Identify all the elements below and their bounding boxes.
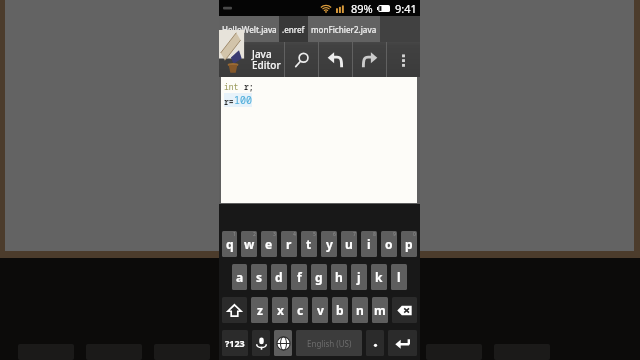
button[interactable]: int <box>221 77 417 203</box>
staticText: a <box>236 269 244 285</box>
button[interactable]: t <box>301 231 317 257</box>
staticText: 0 <box>413 231 416 238</box>
staticText: 5 <box>313 231 316 238</box>
button[interactable]: d <box>271 264 287 290</box>
button[interactable]: z <box>251 297 268 323</box>
button[interactable]: h <box>331 264 347 290</box>
staticText: 100 <box>234 93 252 107</box>
button[interactable]: Undo <box>319 42 352 77</box>
staticText: d <box>275 269 283 285</box>
staticText: 1 <box>233 231 236 238</box>
button[interactable]: Java Editor <box>219 42 284 77</box>
staticText: t <box>306 236 312 252</box>
button[interactable]: w <box>241 231 257 257</box>
button[interactable]: c <box>292 297 308 323</box>
button[interactable]: e <box>261 231 277 257</box>
button[interactable]: n <box>352 297 368 323</box>
button[interactable]: monFichier2.java <box>308 16 380 42</box>
staticText: 8 <box>373 231 376 238</box>
staticText: ?123 <box>225 337 245 349</box>
button[interactable]: Enter <box>388 330 417 356</box>
staticText: r= <box>224 96 234 107</box>
button[interactable]: y <box>321 231 337 257</box>
staticText: n <box>356 302 364 318</box>
staticText: int <box>224 81 244 92</box>
staticText: 89% <box>351 1 373 16</box>
staticText: u <box>345 236 353 252</box>
button[interactable]: f <box>291 264 307 290</box>
staticText: z <box>257 302 263 318</box>
button[interactable]: a <box>232 264 247 290</box>
staticText: 9 <box>393 231 396 238</box>
button[interactable]: Language <box>274 330 292 356</box>
staticText: 6 <box>333 231 336 238</box>
button[interactable]: k <box>371 264 387 290</box>
staticText: k <box>375 269 383 285</box>
staticText: 3 <box>273 231 276 238</box>
staticText: y <box>326 236 333 252</box>
staticText: h <box>335 269 343 285</box>
staticText: o <box>385 236 393 252</box>
button[interactable]: Period <box>366 330 384 356</box>
staticText: q <box>226 236 234 252</box>
button[interactable]: i <box>361 231 377 257</box>
staticText: b <box>336 302 344 318</box>
staticText: x <box>277 302 284 318</box>
button[interactable]: r <box>281 231 297 257</box>
staticText: Java Editor <box>252 47 281 72</box>
button[interactable]: Search <box>285 42 318 77</box>
staticText: m <box>374 302 386 318</box>
button[interactable]: g <box>311 264 327 290</box>
staticText: j <box>357 269 361 285</box>
staticText: 7 <box>353 231 356 238</box>
staticText: 2 <box>253 231 256 238</box>
button[interactable]: English (US) <box>296 330 362 356</box>
button[interactable]: s <box>251 264 267 290</box>
button[interactable]: q <box>222 231 237 257</box>
staticText: 4 <box>293 231 296 238</box>
staticText: monFichier2.java <box>311 24 377 35</box>
staticText: c <box>297 302 304 318</box>
button[interactable]: b <box>332 297 348 323</box>
button[interactable]: HelloWelt.java <box>219 16 279 42</box>
staticText: r; <box>244 81 254 92</box>
button[interactable]: p <box>401 231 417 257</box>
staticText: f <box>297 269 302 285</box>
button[interactable]: o <box>381 231 397 257</box>
staticText: .enref <box>282 24 305 35</box>
staticText: HelloWelt.java <box>222 24 277 35</box>
staticText: w <box>244 236 255 252</box>
button[interactable]: j <box>351 264 367 290</box>
staticText: l <box>397 269 401 285</box>
staticText: r <box>286 236 292 252</box>
staticText: English (US) <box>307 338 352 349</box>
staticText: 9:41 <box>395 1 417 16</box>
staticText: e <box>265 236 273 252</box>
button[interactable]: u <box>341 231 357 257</box>
button[interactable]: x <box>272 297 288 323</box>
button[interactable]: Shift <box>222 297 247 323</box>
button[interactable]: v <box>312 297 328 323</box>
button[interactable]: More options <box>387 42 420 77</box>
staticText: i <box>367 236 371 252</box>
button[interactable]: m <box>372 297 388 323</box>
button[interactable]: .enref <box>279 16 308 42</box>
button[interactable]: Voice input <box>252 330 270 356</box>
button[interactable]: l <box>391 264 407 290</box>
staticText: g <box>315 269 323 285</box>
staticText: p <box>405 236 413 252</box>
button[interactable]: Symbols <box>222 330 248 356</box>
button[interactable]: Redo <box>353 42 386 77</box>
button[interactable]: Backspace <box>392 297 417 323</box>
staticText: v <box>317 302 324 318</box>
staticText: s <box>256 269 263 285</box>
